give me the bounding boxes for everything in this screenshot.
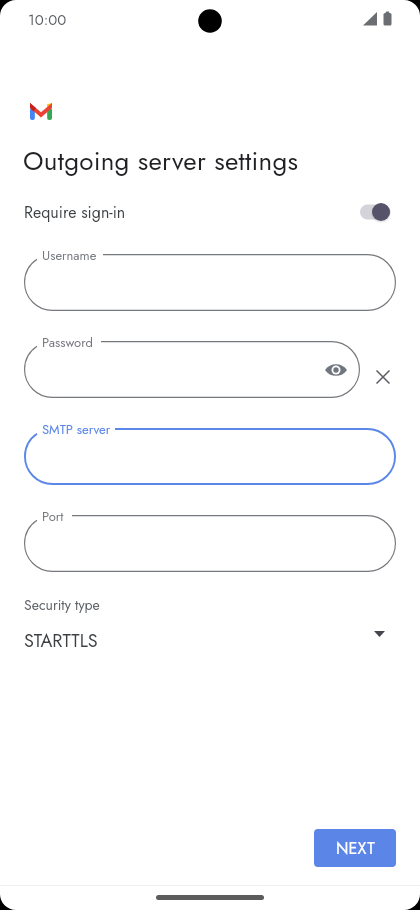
staticText: NEXT [336,837,375,860]
button[interactable]: NEXT [314,829,396,867]
button[interactable]: Show password [323,357,349,383]
staticText: Port [42,507,64,526]
staticText: STARTTLS [24,628,98,654]
staticText: Security type [24,595,100,615]
button[interactable]: Clear [370,364,396,390]
staticText: Outgoing server settings [23,142,299,180]
staticText: Require sign-in [24,201,126,224]
staticText: Password [42,333,94,352]
staticText: 10:00 [28,9,67,31]
staticText: SMTP server [42,420,111,439]
button[interactable]: Port [24,515,396,572]
staticText: Username [42,246,97,265]
button[interactable]: Username [24,254,396,311]
button[interactable]: SMTP server [24,428,396,485]
button[interactable]: Security type [24,595,396,654]
button[interactable]: Password [24,341,360,398]
button[interactable]: Require sign-in [360,200,396,224]
button[interactable]: Require sign-in [24,197,396,227]
